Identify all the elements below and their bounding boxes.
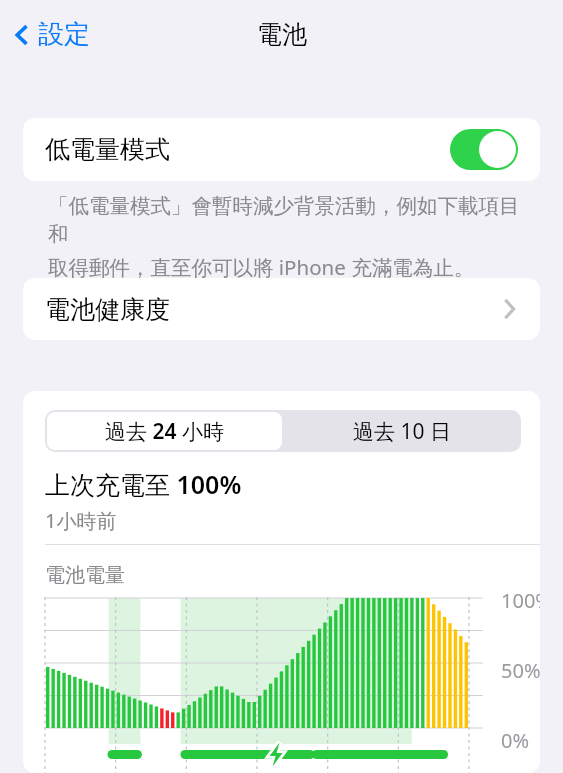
staticText: 100%	[501, 587, 540, 614]
button[interactable]: 設定	[8, 14, 96, 55]
staticText: 上次充電至 100%	[45, 467, 242, 501]
staticText: 過去 10 日	[353, 417, 451, 446]
staticText: 電池	[257, 19, 307, 50]
staticText: 低電量模式	[45, 134, 170, 165]
button[interactable]: 電池健康度	[23, 278, 540, 340]
button[interactable]: 低電量模式	[23, 118, 540, 181]
staticText: 電池電量	[45, 563, 125, 588]
staticText: 設定	[38, 18, 90, 51]
staticText: 電池健康度	[45, 294, 170, 325]
staticText: 「低電量模式」會暫時減少背景活動，例如下載項目和	[48, 193, 528, 247]
button[interactable]: 過去 24 小時	[47, 412, 282, 450]
staticText: 0%	[501, 727, 530, 754]
button[interactable]: 過去 10 日	[284, 410, 519, 452]
staticText: 過去 24 小時	[105, 417, 224, 446]
staticText: 取得郵件，直至你可以將 iPhone 充滿電為止。	[48, 253, 475, 281]
staticText: 1小時前	[45, 507, 117, 534]
button[interactable]: 低電量模式開關	[450, 129, 518, 170]
staticText: 9	[464, 769, 475, 773]
staticText: 50%	[501, 657, 540, 684]
